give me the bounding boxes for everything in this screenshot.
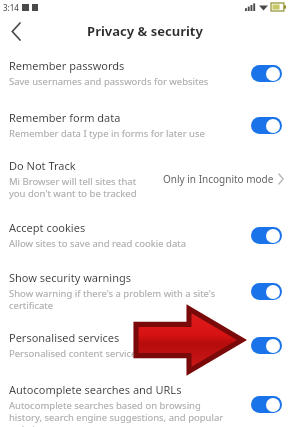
button[interactable]: Personalised services: [0, 330, 290, 360]
button[interactable]: Do Not Track: [0, 158, 290, 200]
button[interactable]: Toggle: [251, 227, 282, 244]
staticText: Remember data I type in forms for later …: [9, 127, 205, 140]
button[interactable]: Toggle: [251, 117, 282, 134]
staticText: Privacy & security: [0, 22, 290, 40]
button[interactable]: Toggle: [251, 283, 282, 300]
staticText: Remember form data: [9, 110, 121, 125]
button[interactable]: Accept cookies: [0, 220, 290, 250]
button[interactable]: Remember form data: [0, 110, 290, 140]
button[interactable]: Toggle: [251, 65, 282, 82]
button[interactable]: Show security warnings: [0, 270, 290, 312]
button[interactable]: Toggle: [251, 396, 282, 413]
staticText: Personalised services: [9, 330, 120, 345]
staticText: Show warning if there's a problem with a…: [9, 287, 216, 312]
staticText: Only in Incognito mode: [163, 172, 274, 186]
staticText: 3:14: [3, 2, 19, 13]
button[interactable]: Back: [0, 15, 32, 47]
staticText: Accept cookies: [9, 220, 86, 235]
staticText: Autocomplete searches and URLs: [9, 382, 182, 397]
staticText: Allow sites to save and read cookie data: [9, 237, 187, 250]
button[interactable]: Autocomplete searches and URLs: [0, 382, 290, 427]
staticText: Do Not Track: [9, 158, 76, 173]
button[interactable]: Toggle: [251, 337, 282, 354]
staticText: Mi Browser will tell sites that you don'…: [9, 175, 137, 200]
staticText: Personalised content services: [9, 347, 141, 360]
staticText: Save usernames and passwords for website…: [9, 75, 209, 88]
staticText: Remember passwords: [9, 58, 125, 73]
staticText: Show security warnings: [9, 270, 131, 285]
button[interactable]: Remember passwords: [0, 58, 290, 88]
staticText: Autocomplete searches based on browsing …: [9, 399, 224, 427]
